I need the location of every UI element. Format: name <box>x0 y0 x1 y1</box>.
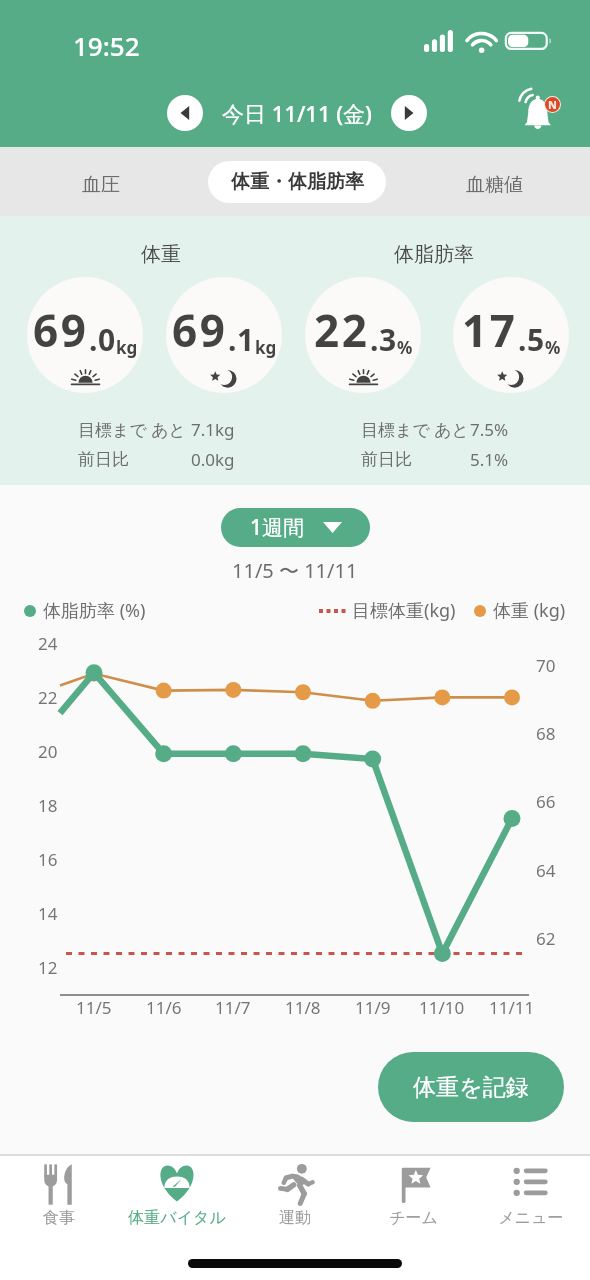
staticText: kg <box>116 336 138 359</box>
button[interactable]: 体重・体脂肪率 <box>208 161 386 203</box>
staticText: 体重・体脂肪率 <box>231 170 364 194</box>
staticText: 11/8 <box>285 996 321 1019</box>
staticText: .5 <box>518 319 545 360</box>
staticText: 1週間 <box>250 513 305 542</box>
button[interactable]: 血圧 <box>66 161 136 209</box>
staticText: 目標まで あと <box>361 418 470 441</box>
staticText: 12 <box>38 956 58 979</box>
button[interactable]: メニュー <box>472 1162 590 1228</box>
staticText: 11/6 <box>146 996 182 1019</box>
staticText: 5.1% <box>470 448 509 471</box>
button[interactable]: 体重バイタル <box>118 1162 236 1228</box>
staticText: 69 <box>172 300 228 360</box>
staticText: 0.0kg <box>191 448 235 471</box>
staticText: 運動 <box>279 1208 311 1228</box>
staticText: 体重 <box>141 242 181 267</box>
staticText: 11/11 <box>489 996 535 1019</box>
staticText: 14 <box>38 902 58 925</box>
staticText: 体脂肪率 <box>394 242 474 267</box>
staticText: .1 <box>228 319 255 360</box>
staticText: 前日比 <box>78 449 129 470</box>
staticText: 11/5 <box>76 996 112 1019</box>
staticText: .3 <box>370 319 397 360</box>
staticText: 血糖値 <box>466 173 523 197</box>
staticText: 前日比 <box>361 449 412 470</box>
staticText: 11/7 <box>215 996 251 1019</box>
staticText: 目標体重(kg) <box>352 598 456 623</box>
button[interactable]: 69 <box>166 277 282 393</box>
staticText: .0 <box>89 319 116 360</box>
button[interactable]: Previous day <box>167 95 203 131</box>
staticText: 17 <box>462 300 518 360</box>
staticText: 16 <box>38 848 58 871</box>
button[interactable]: 69 <box>27 277 143 393</box>
button[interactable]: 1週間 <box>221 508 370 547</box>
staticText: 体脂肪率 (%) <box>43 598 146 623</box>
staticText: 今日 11/11 (金) <box>222 98 372 128</box>
staticText: 体重を記録 <box>413 1073 529 1102</box>
button[interactable]: Next day <box>391 95 427 131</box>
staticText: チーム <box>389 1208 438 1228</box>
staticText: 66 <box>536 790 556 813</box>
staticText: 64 <box>536 859 556 882</box>
staticText: 62 <box>536 927 556 950</box>
staticText: 11/9 <box>355 996 391 1019</box>
staticText: N <box>548 97 557 112</box>
staticText: 食事 <box>43 1208 75 1228</box>
staticText: 目標まで あと <box>78 418 187 441</box>
staticText: 22 <box>314 300 370 360</box>
staticText: % <box>545 336 561 359</box>
staticText: 70 <box>536 654 556 677</box>
staticText: メニュー <box>498 1208 564 1228</box>
staticText: 20 <box>38 740 58 763</box>
button[interactable]: Notifications <box>505 86 563 144</box>
button[interactable]: 17 <box>453 277 569 393</box>
button[interactable]: 22 <box>305 277 421 393</box>
staticText: % <box>397 336 413 359</box>
button[interactable]: チーム <box>354 1162 472 1228</box>
staticText: 11/10 <box>419 996 465 1019</box>
staticText: kg <box>255 336 277 359</box>
staticText: 11/5 〜 11/11 <box>232 557 358 584</box>
staticText: 18 <box>38 794 58 817</box>
button[interactable]: 運動 <box>236 1162 354 1228</box>
staticText: 体重 (kg) <box>493 598 566 623</box>
staticText: 7.5% <box>470 418 509 441</box>
staticText: 68 <box>536 722 556 745</box>
staticText: 7.1kg <box>191 418 235 441</box>
button[interactable]: 体重を記録 <box>378 1052 564 1122</box>
staticText: 体重バイタル <box>128 1208 226 1228</box>
staticText: 69 <box>33 300 89 360</box>
button[interactable]: 血糖値 <box>450 161 539 209</box>
staticText: 24 <box>38 632 58 655</box>
staticText: 血圧 <box>82 173 120 197</box>
button[interactable]: 食事 <box>0 1162 118 1228</box>
staticText: 22 <box>38 686 58 709</box>
staticText: 19:52 <box>73 28 140 63</box>
